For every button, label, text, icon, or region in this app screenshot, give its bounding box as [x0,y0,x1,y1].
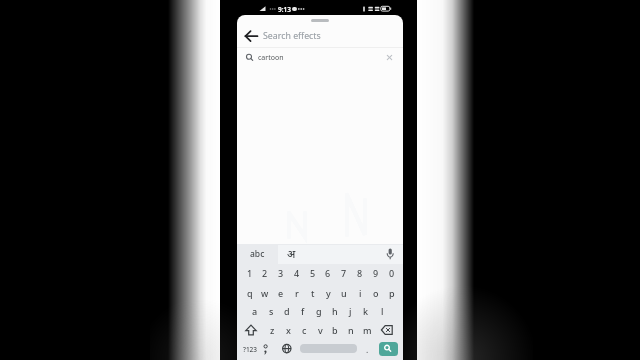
staticText: 2 [262,267,268,279]
staticText: k [363,305,369,317]
button[interactable]: s [264,303,278,319]
button[interactable]: v [313,322,327,338]
staticText: 4 [294,267,300,279]
staticText: g [316,305,322,317]
staticText: abc [250,248,265,260]
staticText: t [311,287,315,299]
staticText: e [278,287,284,299]
staticText: b [332,324,338,336]
staticText: c [302,324,307,336]
button[interactable]: अ [281,246,301,262]
staticText: i [359,287,362,299]
button[interactable]: . [362,343,372,357]
button[interactable]: 7 [337,265,351,281]
button[interactable]: x [281,322,295,338]
button[interactable]: ?123 [240,343,260,355]
button[interactable] [379,342,398,356]
button[interactable]: w [258,285,272,301]
staticText: Search effects [263,30,321,42]
button[interactable] [280,341,294,356]
staticText: ?123 [243,345,258,354]
button[interactable]: k [359,303,373,319]
button[interactable] [300,344,357,353]
button[interactable]: 2 [258,265,272,281]
button[interactable] [383,51,396,64]
button[interactable]: r [290,285,304,301]
button[interactable] [383,245,398,263]
staticText: f [301,305,305,317]
button[interactable]: 1 [243,265,257,281]
button[interactable] [259,341,272,356]
button[interactable]: m [360,322,374,338]
button[interactable]: y [321,285,335,301]
button[interactable]: 4 [290,265,304,281]
button[interactable]: b [328,322,342,338]
button[interactable]: z [265,322,279,338]
staticText: r [295,287,299,299]
button[interactable]: abc [244,247,270,261]
button[interactable] [241,49,399,66]
staticText: 0 [389,267,395,279]
button[interactable]: 8 [353,265,367,281]
staticText: 7 [341,267,347,279]
button[interactable]: d [280,303,294,319]
button[interactable]: i [353,285,367,301]
staticText: cartoon [258,53,284,63]
staticText: 3 [278,267,284,279]
staticText: h [332,305,338,317]
staticText: m [363,324,372,336]
staticText: x [286,324,291,336]
staticText: l [381,305,384,317]
button[interactable]: e [274,285,288,301]
staticText: q [247,287,253,299]
staticText: s [269,305,274,317]
button[interactable]: 5 [306,265,320,281]
staticText: 5 [310,267,316,279]
staticText: p [389,287,395,299]
button[interactable]: 6 [321,265,335,281]
button[interactable]: j [343,303,357,319]
staticText: y [326,287,331,299]
staticText: w [261,287,269,299]
staticText: a [252,305,258,317]
staticText: 9:13 [278,5,291,14]
staticText: 1 [247,267,253,279]
staticText: अ [287,247,296,261]
staticText: d [284,305,290,317]
staticText: v [318,324,323,336]
button[interactable]: l [375,303,389,319]
button[interactable] [239,25,263,47]
button[interactable]: g [312,303,326,319]
button[interactable]: 9 [369,265,383,281]
button[interactable]: p [385,285,399,301]
staticText: 8 [357,267,363,279]
button[interactable]: f [296,303,310,319]
button[interactable]: a [248,303,262,319]
button[interactable] [379,322,395,338]
button[interactable]: h [328,303,342,319]
staticText: o [373,287,379,299]
button[interactable]: n [344,322,358,338]
button[interactable]: 0 [385,265,399,281]
button[interactable]: o [369,285,383,301]
staticText: z [270,324,275,336]
staticText: u [341,287,347,299]
button[interactable]: q [243,285,257,301]
button[interactable]: t [306,285,320,301]
staticText: 6 [325,267,331,279]
button[interactable]: 3 [274,265,288,281]
staticText: j [349,305,352,317]
button[interactable]: c [297,322,311,338]
button[interactable] [243,322,259,338]
button[interactable]: u [337,285,351,301]
staticText: 9 [373,267,379,279]
staticText: n [348,324,354,336]
staticText: . [366,344,369,356]
